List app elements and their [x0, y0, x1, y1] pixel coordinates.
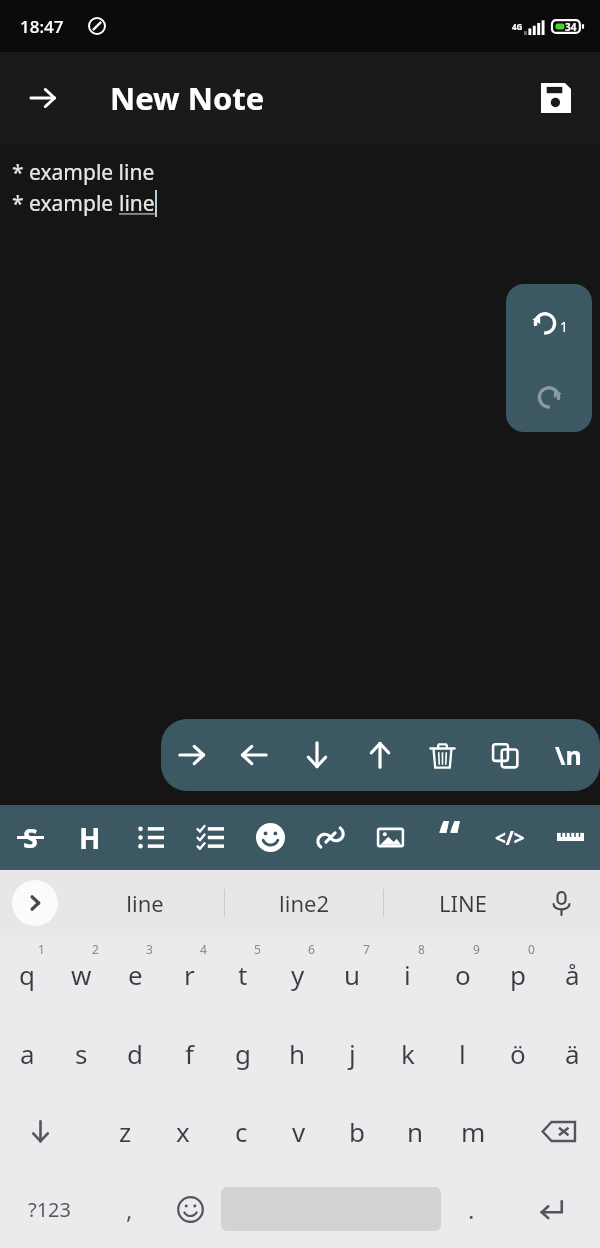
button[interactable]: t: [216, 935, 270, 1014]
button[interactable]: Redo: [506, 358, 592, 432]
button[interactable]: Emoji: [240, 805, 300, 870]
button[interactable]: n: [386, 1092, 444, 1170]
button[interactable]: New line: [537, 719, 600, 791]
staticText: 4: [200, 941, 207, 957]
button[interactable]: Move up: [285, 719, 348, 791]
staticText: .: [468, 1193, 475, 1226]
staticText: p: [510, 957, 526, 992]
staticText: 5: [254, 941, 261, 957]
button[interactable]: line2: [225, 870, 383, 935]
button[interactable]: Bullet list: [120, 805, 180, 870]
button[interactable]: i: [380, 935, 435, 1014]
staticText: 8: [418, 941, 425, 957]
button[interactable]: j: [325, 1014, 380, 1092]
button[interactable]: p: [490, 935, 545, 1014]
staticText: * example line: [12, 158, 155, 187]
button[interactable]: x: [154, 1092, 212, 1170]
button[interactable]: Quote: [420, 805, 480, 870]
staticText: z: [119, 1114, 132, 1149]
button[interactable]: Expand toolbar: [12, 880, 58, 926]
button[interactable]: b: [328, 1092, 386, 1170]
button[interactable]: Heading: [60, 805, 120, 870]
button[interactable]: ?123: [0, 1170, 99, 1248]
button[interactable]: Copy: [474, 719, 537, 791]
button[interactable]: Horizontal rule: [540, 805, 600, 870]
staticText: \n: [555, 738, 582, 772]
button[interactable]: l: [435, 1014, 490, 1092]
staticText: h: [289, 1036, 306, 1071]
staticText: 34: [565, 20, 577, 34]
staticText: g: [235, 1036, 251, 1071]
button[interactable]: q: [0, 935, 54, 1014]
staticText: 9: [473, 941, 480, 957]
button[interactable]: v: [270, 1092, 328, 1170]
button[interactable]: .: [441, 1170, 502, 1248]
button[interactable]: y: [270, 935, 325, 1014]
button[interactable]: Move right: [223, 719, 285, 791]
staticText: line: [119, 189, 155, 218]
button[interactable]: Backspace: [518, 1092, 600, 1170]
staticText: 1: [560, 317, 569, 336]
staticText: line: [126, 888, 164, 918]
button[interactable]: line: [66, 870, 224, 935]
button[interactable]: Delete: [411, 719, 474, 791]
button[interactable]: a: [0, 1014, 54, 1092]
button[interactable]: Link: [300, 805, 360, 870]
button[interactable]: g: [216, 1014, 270, 1092]
button[interactable]: e: [108, 935, 162, 1014]
button[interactable]: h: [270, 1014, 325, 1092]
staticText: line2: [279, 888, 329, 918]
staticText: m: [461, 1114, 486, 1149]
button[interactable]: ä: [545, 1014, 600, 1092]
button[interactable]: Image: [360, 805, 420, 870]
staticText: b: [349, 1114, 365, 1149]
staticText: * example: [12, 189, 119, 218]
staticText: e: [128, 957, 143, 992]
button[interactable]: Checklist: [180, 805, 240, 870]
staticText: 4G: [512, 21, 523, 32]
staticText: “: [439, 805, 461, 856]
button[interactable]: Code: [480, 805, 540, 870]
staticText: LINE: [439, 888, 487, 918]
staticText: a: [20, 1036, 35, 1071]
staticText: v: [292, 1114, 306, 1149]
button[interactable]: c: [212, 1092, 270, 1170]
button[interactable]: Save: [528, 70, 584, 126]
button[interactable]: å: [545, 935, 600, 1014]
staticText: ä: [565, 1036, 580, 1071]
staticText: i: [404, 957, 411, 992]
staticText: 0: [528, 941, 535, 957]
button[interactable]: f: [162, 1014, 216, 1092]
button[interactable]: Move down: [348, 719, 411, 791]
staticText: 6: [308, 941, 315, 957]
button[interactable]: Voice input: [540, 882, 582, 924]
button[interactable]: z: [96, 1092, 154, 1170]
button[interactable]: Back: [14, 69, 72, 127]
staticText: r: [184, 957, 195, 992]
staticText: k: [401, 1036, 415, 1071]
button[interactable]: r: [162, 935, 216, 1014]
button[interactable]: d: [108, 1014, 162, 1092]
staticText: H: [79, 819, 101, 857]
button[interactable]: u: [325, 935, 380, 1014]
staticText: x: [176, 1114, 190, 1149]
button[interactable]: Emoji: [160, 1170, 221, 1248]
button[interactable]: s: [54, 1014, 108, 1092]
button[interactable]: o: [435, 935, 490, 1014]
button[interactable]: m: [444, 1092, 502, 1170]
button[interactable]: Enter: [502, 1170, 600, 1248]
button[interactable]: Move left: [161, 719, 223, 791]
staticText: 18:47: [20, 15, 64, 38]
button[interactable]: Strikethrough: [0, 805, 60, 870]
button[interactable]: w: [54, 935, 108, 1014]
button[interactable]: Undo: [506, 284, 592, 358]
staticText: o: [455, 957, 471, 992]
button[interactable]: ö: [490, 1014, 545, 1092]
button[interactable]: ,: [99, 1170, 160, 1248]
staticText: New Note: [110, 77, 265, 119]
button[interactable]: LINE: [384, 870, 542, 935]
button[interactable]: Shift: [0, 1092, 81, 1170]
staticText: t: [238, 957, 248, 992]
button[interactable]: k: [380, 1014, 435, 1092]
